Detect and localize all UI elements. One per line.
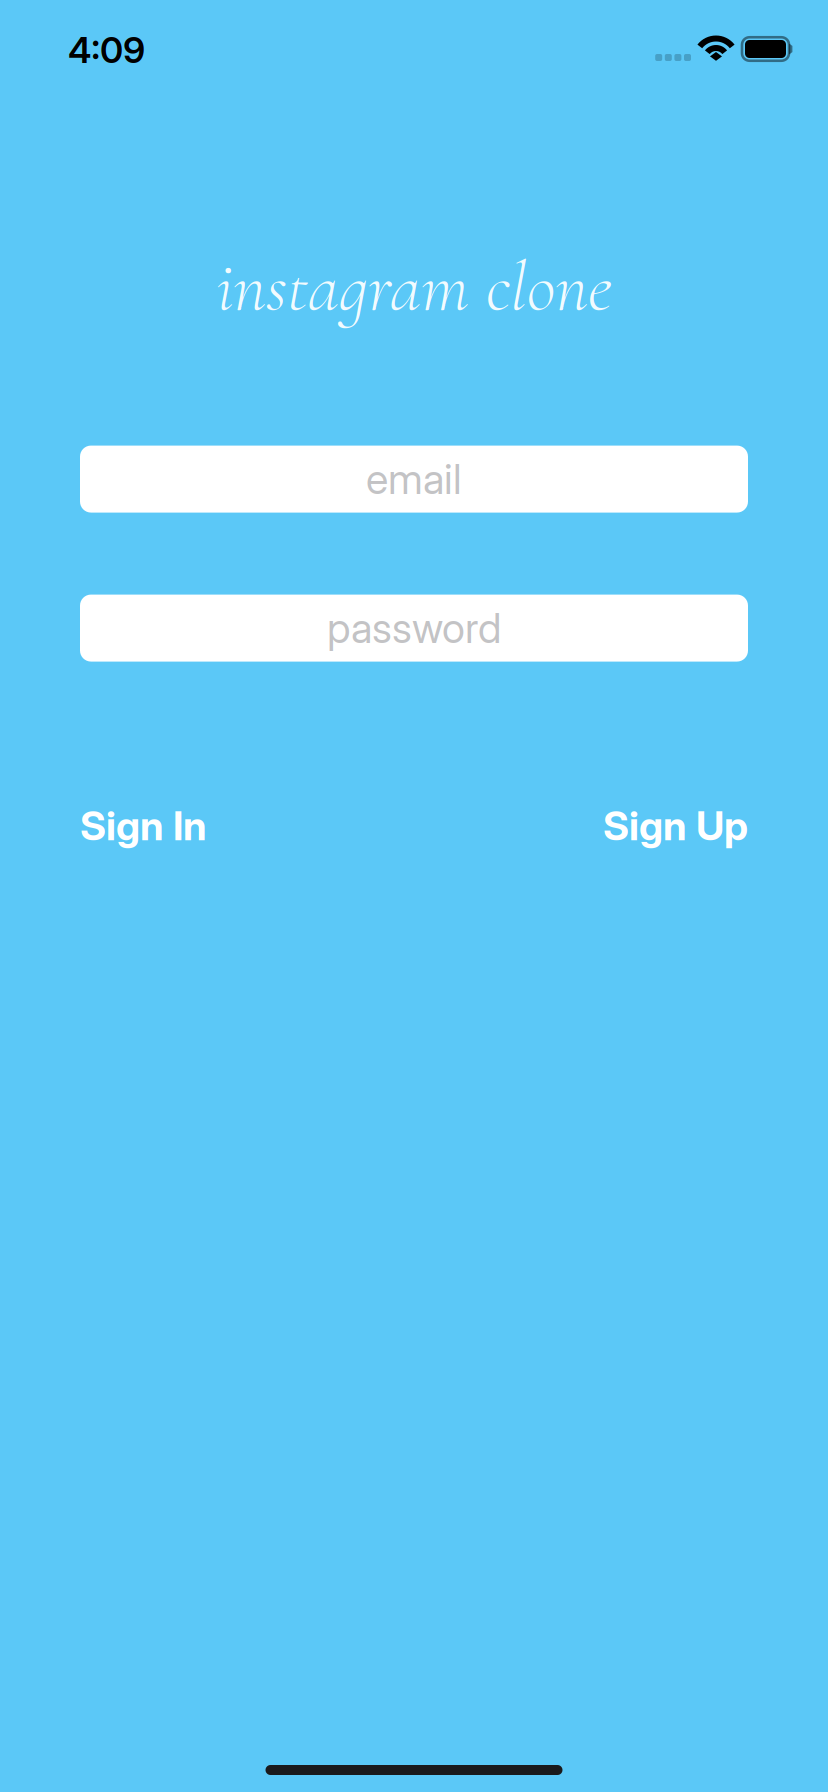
staticText: password: [327, 603, 501, 653]
button[interactable]: Sign In: [80, 802, 207, 850]
staticText: instagram clone: [216, 244, 612, 330]
staticText: Sign In: [80, 802, 207, 850]
staticText: Sign Up: [603, 802, 748, 850]
button[interactable]: password: [80, 595, 748, 662]
button[interactable]: email: [80, 446, 748, 513]
button[interactable]: Sign Up: [603, 802, 748, 850]
staticText: 4:09: [68, 28, 145, 72]
staticText: email: [366, 454, 462, 504]
